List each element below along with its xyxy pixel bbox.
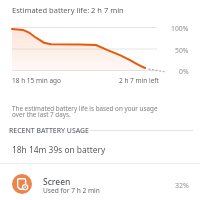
staticText: 32% [175, 181, 189, 191]
staticText: 2 h 7 min left [119, 76, 159, 85]
staticText: RECENT BATTERY USAGE [9, 126, 89, 135]
staticText: 100% [171, 24, 189, 33]
staticText: 18 h 15 min ago [12, 76, 61, 85]
staticText: Estimated battery life: 2 h 7 min [12, 5, 124, 15]
staticText: Used for 7 h 2 min [43, 186, 100, 195]
button[interactable]: Screen [0, 167, 200, 200]
staticText: 18h 14m 39s on battery [12, 144, 106, 155]
staticText: 0% [179, 67, 189, 76]
staticText: The estimated battery life is based on y… [12, 104, 158, 119]
staticText: 50% [175, 46, 189, 55]
staticText: Screen [43, 176, 71, 188]
